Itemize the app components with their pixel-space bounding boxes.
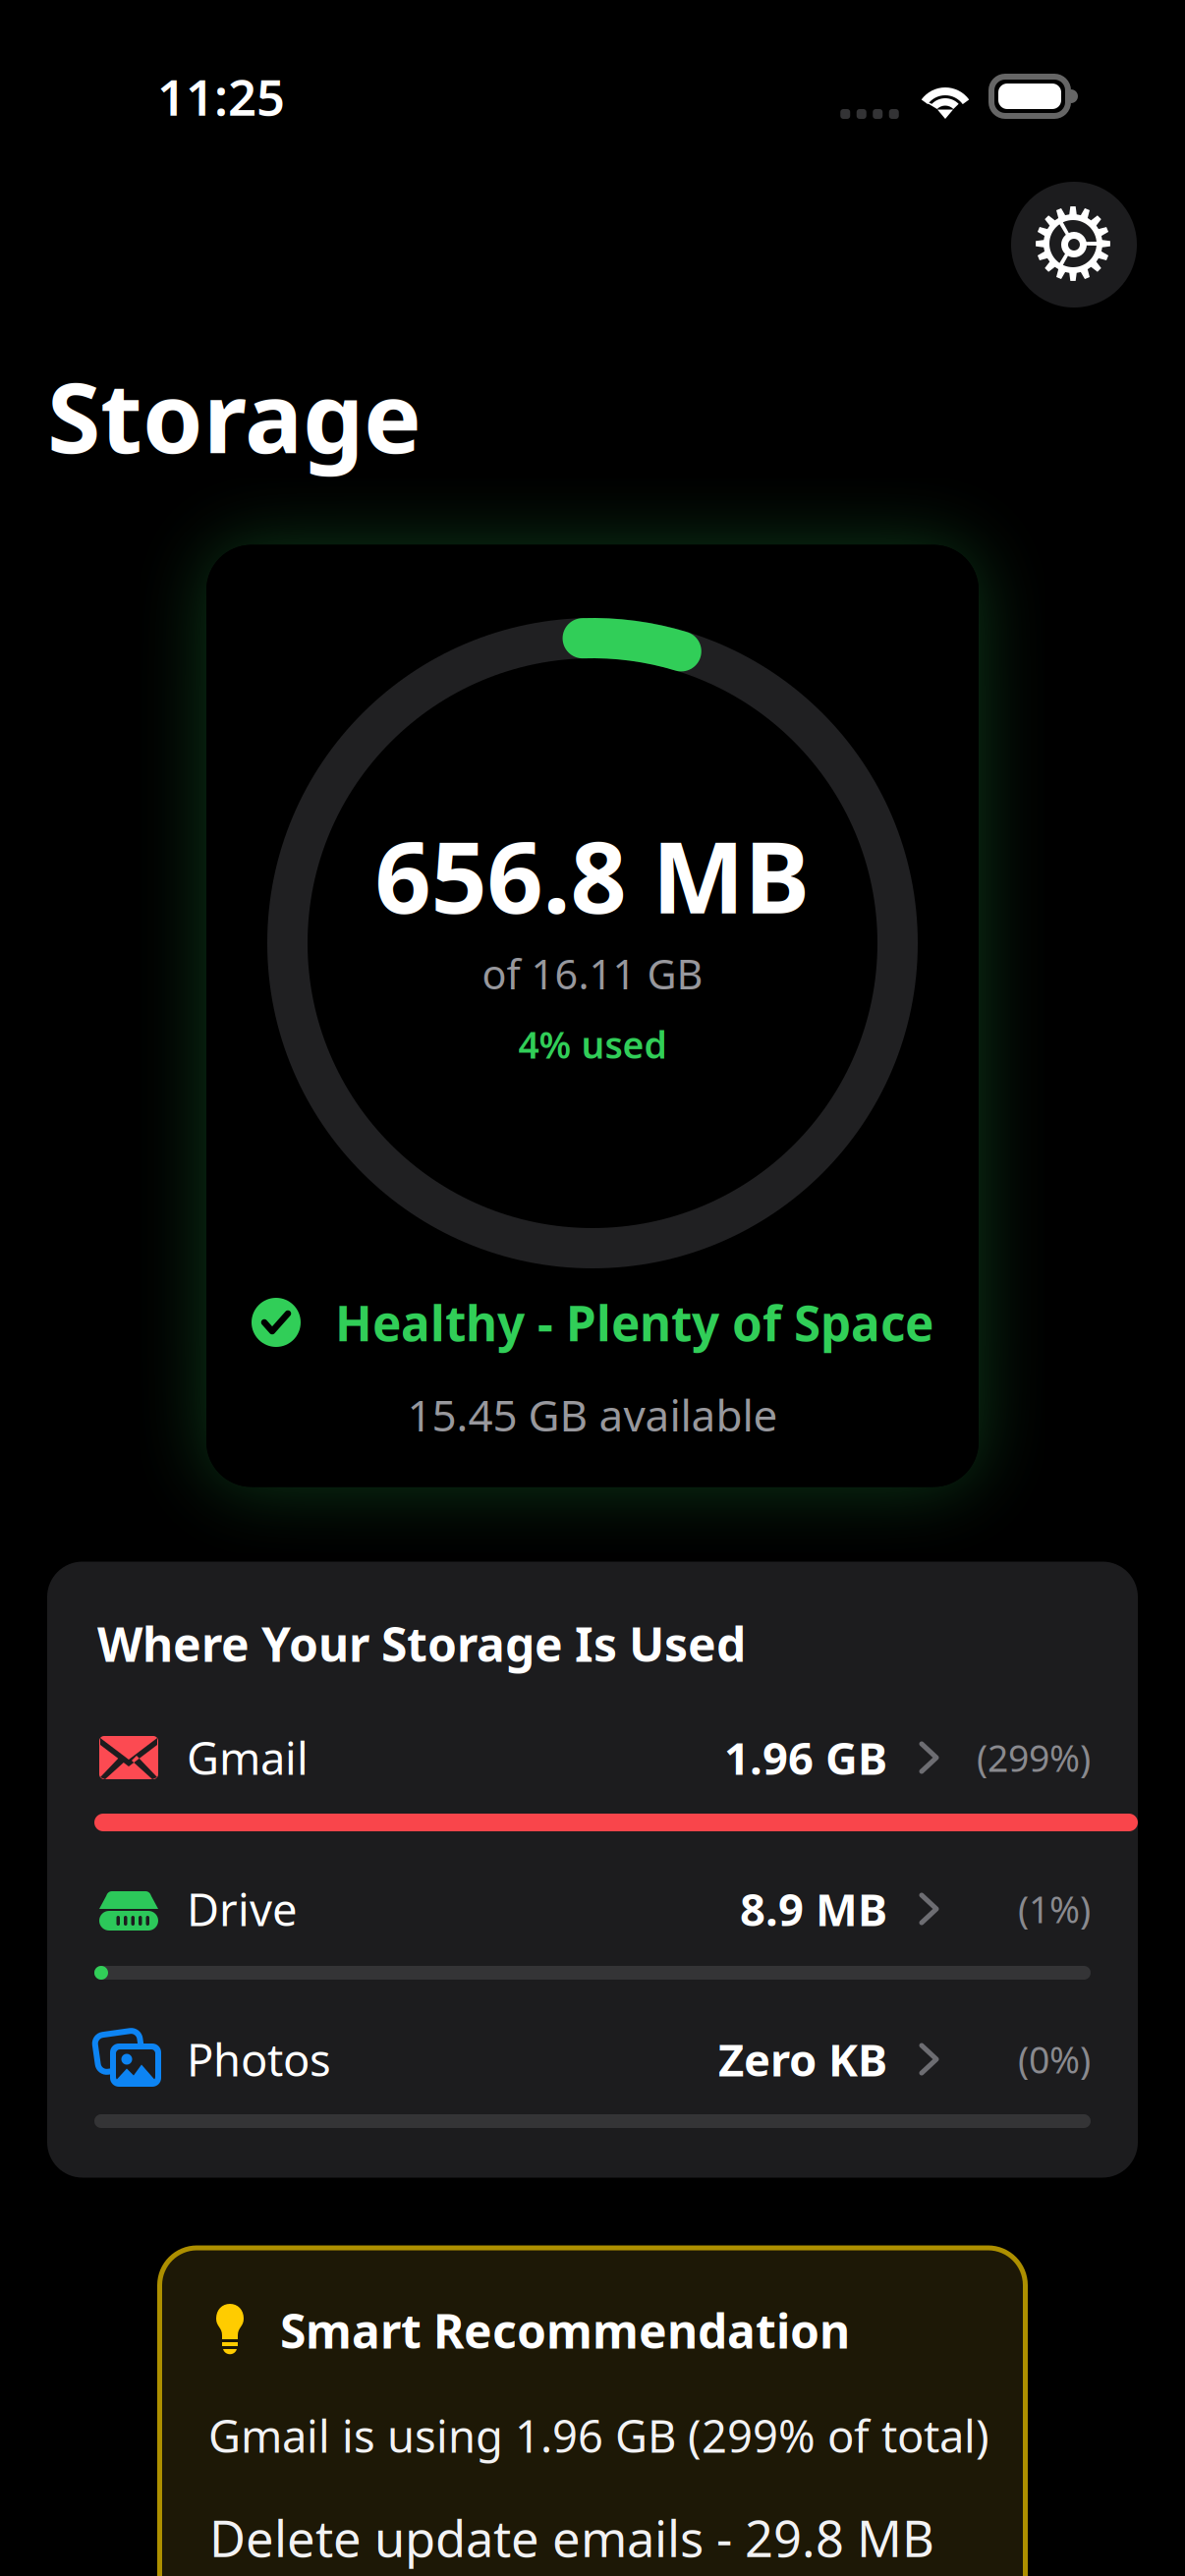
staticText: 1.96 GB: [724, 1728, 887, 1787]
button[interactable]: Drive: [96, 1878, 1091, 1939]
staticText: (299%): [977, 1733, 1091, 1782]
staticText: 8.9 MB: [740, 1879, 887, 1938]
staticText: (1%): [1018, 1885, 1091, 1933]
staticText: Storage: [47, 351, 422, 480]
staticText: Delete update emails - 29.8 MB: [209, 2505, 934, 2571]
staticText: Gmail: [187, 1728, 309, 1787]
staticText: Healthy - Plenty of Space: [335, 1290, 933, 1355]
staticText: 15.45 GB available: [407, 1386, 778, 1443]
button[interactable]: Gmail: [96, 1727, 1091, 1788]
staticText: Photos: [187, 2030, 331, 2089]
staticText: Zero KB: [718, 2030, 887, 2089]
staticText: Drive: [187, 1879, 298, 1938]
staticText: Gmail is using 1.96 GB (299% of total): [208, 2406, 989, 2465]
staticText: Smart Recommendation: [280, 2299, 850, 2362]
staticText: of 16.11 GB: [482, 947, 703, 1001]
button[interactable]: Photos: [96, 2029, 1091, 2090]
staticText: Where Your Storage Is Used: [97, 1612, 746, 1675]
staticText: (0%): [1018, 2035, 1091, 2084]
staticText: 656.8 MB: [375, 810, 810, 941]
staticText: 4% used: [518, 1020, 667, 1069]
staticText: 11:25: [157, 63, 285, 129]
button[interactable]: Settings: [1011, 182, 1137, 308]
